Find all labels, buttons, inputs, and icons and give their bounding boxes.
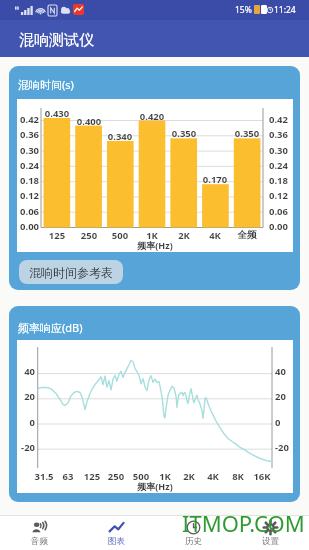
- staticText: 125: [41, 229, 73, 242]
- staticText: 2K: [173, 470, 205, 483]
- staticText: 250: [73, 229, 105, 242]
- button[interactable]: 音频: [0, 516, 78, 550]
- staticText: 图表: [108, 536, 125, 547]
- staticText: ITMOP.COM: [182, 508, 305, 538]
- button[interactable]: 图表: [78, 516, 155, 550]
- button[interactable]: 混响时间(s): [9, 66, 300, 290]
- staticText: 0.30: [16, 144, 39, 157]
- staticText: 0.340: [104, 130, 136, 143]
- button[interactable]: 混响时间参考表: [19, 260, 123, 284]
- staticText: 500: [104, 229, 136, 242]
- staticText: 11:24: [274, 4, 296, 16]
- staticText: 音频: [31, 536, 48, 547]
- staticText: 1K: [136, 229, 168, 242]
- staticText: 31.5: [28, 470, 60, 483]
- staticText: 250: [100, 470, 132, 483]
- staticText: 0.12: [269, 189, 295, 202]
- staticText: 0.42: [269, 113, 295, 126]
- staticText: 40: [13, 365, 35, 378]
- staticText: 0.420: [136, 110, 168, 123]
- staticText: 混响时间(s): [18, 77, 74, 92]
- staticText: 频率(Hz): [120, 239, 190, 251]
- staticText: 0.24: [16, 159, 39, 172]
- staticText: 0: [275, 416, 299, 429]
- staticText: 0.36: [269, 128, 295, 141]
- staticText: 1K: [149, 470, 181, 483]
- staticText: 0.350: [231, 127, 263, 140]
- staticText: 0.00: [269, 220, 295, 233]
- staticText: 设置: [262, 536, 279, 547]
- staticText: 全频: [231, 229, 263, 241]
- staticText: -20: [13, 441, 35, 454]
- staticText: 125: [76, 470, 108, 483]
- button[interactable]: 历史: [155, 516, 232, 550]
- staticText: 500: [125, 470, 157, 483]
- staticText: 0.42: [16, 113, 39, 126]
- staticText: 0.24: [269, 159, 295, 172]
- staticText: 0.430: [41, 107, 73, 120]
- staticText: 0.170: [199, 173, 231, 186]
- staticText: 频率响应(dB): [18, 320, 83, 335]
- staticText: 2K: [168, 229, 200, 242]
- staticText: -20: [275, 441, 299, 454]
- staticText: 0.00: [16, 220, 39, 233]
- staticText: 频率(Hz): [120, 480, 190, 492]
- staticText: 历史: [185, 536, 202, 547]
- staticText: 混响测试仪: [19, 31, 94, 50]
- staticText: 混响时间参考表: [29, 265, 113, 280]
- staticText: 16K: [246, 470, 278, 483]
- staticText: 0.06: [269, 205, 295, 218]
- button[interactable]: 频率响应(dB): [9, 306, 300, 502]
- staticText: 63: [52, 470, 84, 483]
- staticText: 0.350: [168, 127, 200, 140]
- staticText: 0.18: [269, 174, 295, 187]
- staticText: 0.400: [73, 115, 105, 128]
- button[interactable]: 设置: [232, 516, 309, 550]
- staticText: 4K: [199, 229, 231, 242]
- staticText: 0.18: [16, 174, 39, 187]
- staticText: 0.06: [16, 205, 39, 218]
- staticText: 0.36: [16, 128, 39, 141]
- staticText: 0: [13, 416, 35, 429]
- staticText: 20: [13, 390, 35, 403]
- staticText: 40: [275, 365, 299, 378]
- staticText: 8K: [222, 470, 254, 483]
- staticText: 4K: [197, 470, 229, 483]
- staticText: 0.30: [269, 144, 295, 157]
- staticText: 0.12: [16, 189, 39, 202]
- staticText: 20: [275, 390, 299, 403]
- staticText: 15%: [235, 4, 252, 16]
